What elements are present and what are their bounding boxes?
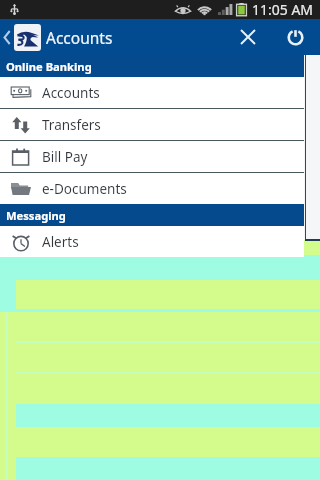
staticText: Alerts [42, 233, 79, 251]
staticText: Accounts [42, 84, 100, 102]
button[interactable]: Transfers [0, 109, 304, 140]
button[interactable]: e-Documents [0, 173, 304, 204]
button[interactable]: Sign out [278, 19, 312, 55]
staticText: e-Documents [42, 180, 127, 198]
staticText: Online Banking [6, 59, 92, 74]
button[interactable]: Alerts [0, 226, 304, 257]
button[interactable]: Back [0, 19, 14, 55]
staticText: Bill Pay [42, 148, 88, 166]
staticText: Transfers [42, 116, 101, 134]
button[interactable]: Accounts [0, 77, 304, 108]
button[interactable]: Home [14, 24, 41, 51]
button[interactable]: Close [230, 19, 266, 55]
button[interactable]: Bill Pay [0, 141, 304, 172]
staticText: Messaging [6, 208, 66, 223]
staticText: Accounts [46, 27, 113, 48]
staticText: 11:05 AM [252, 0, 314, 19]
